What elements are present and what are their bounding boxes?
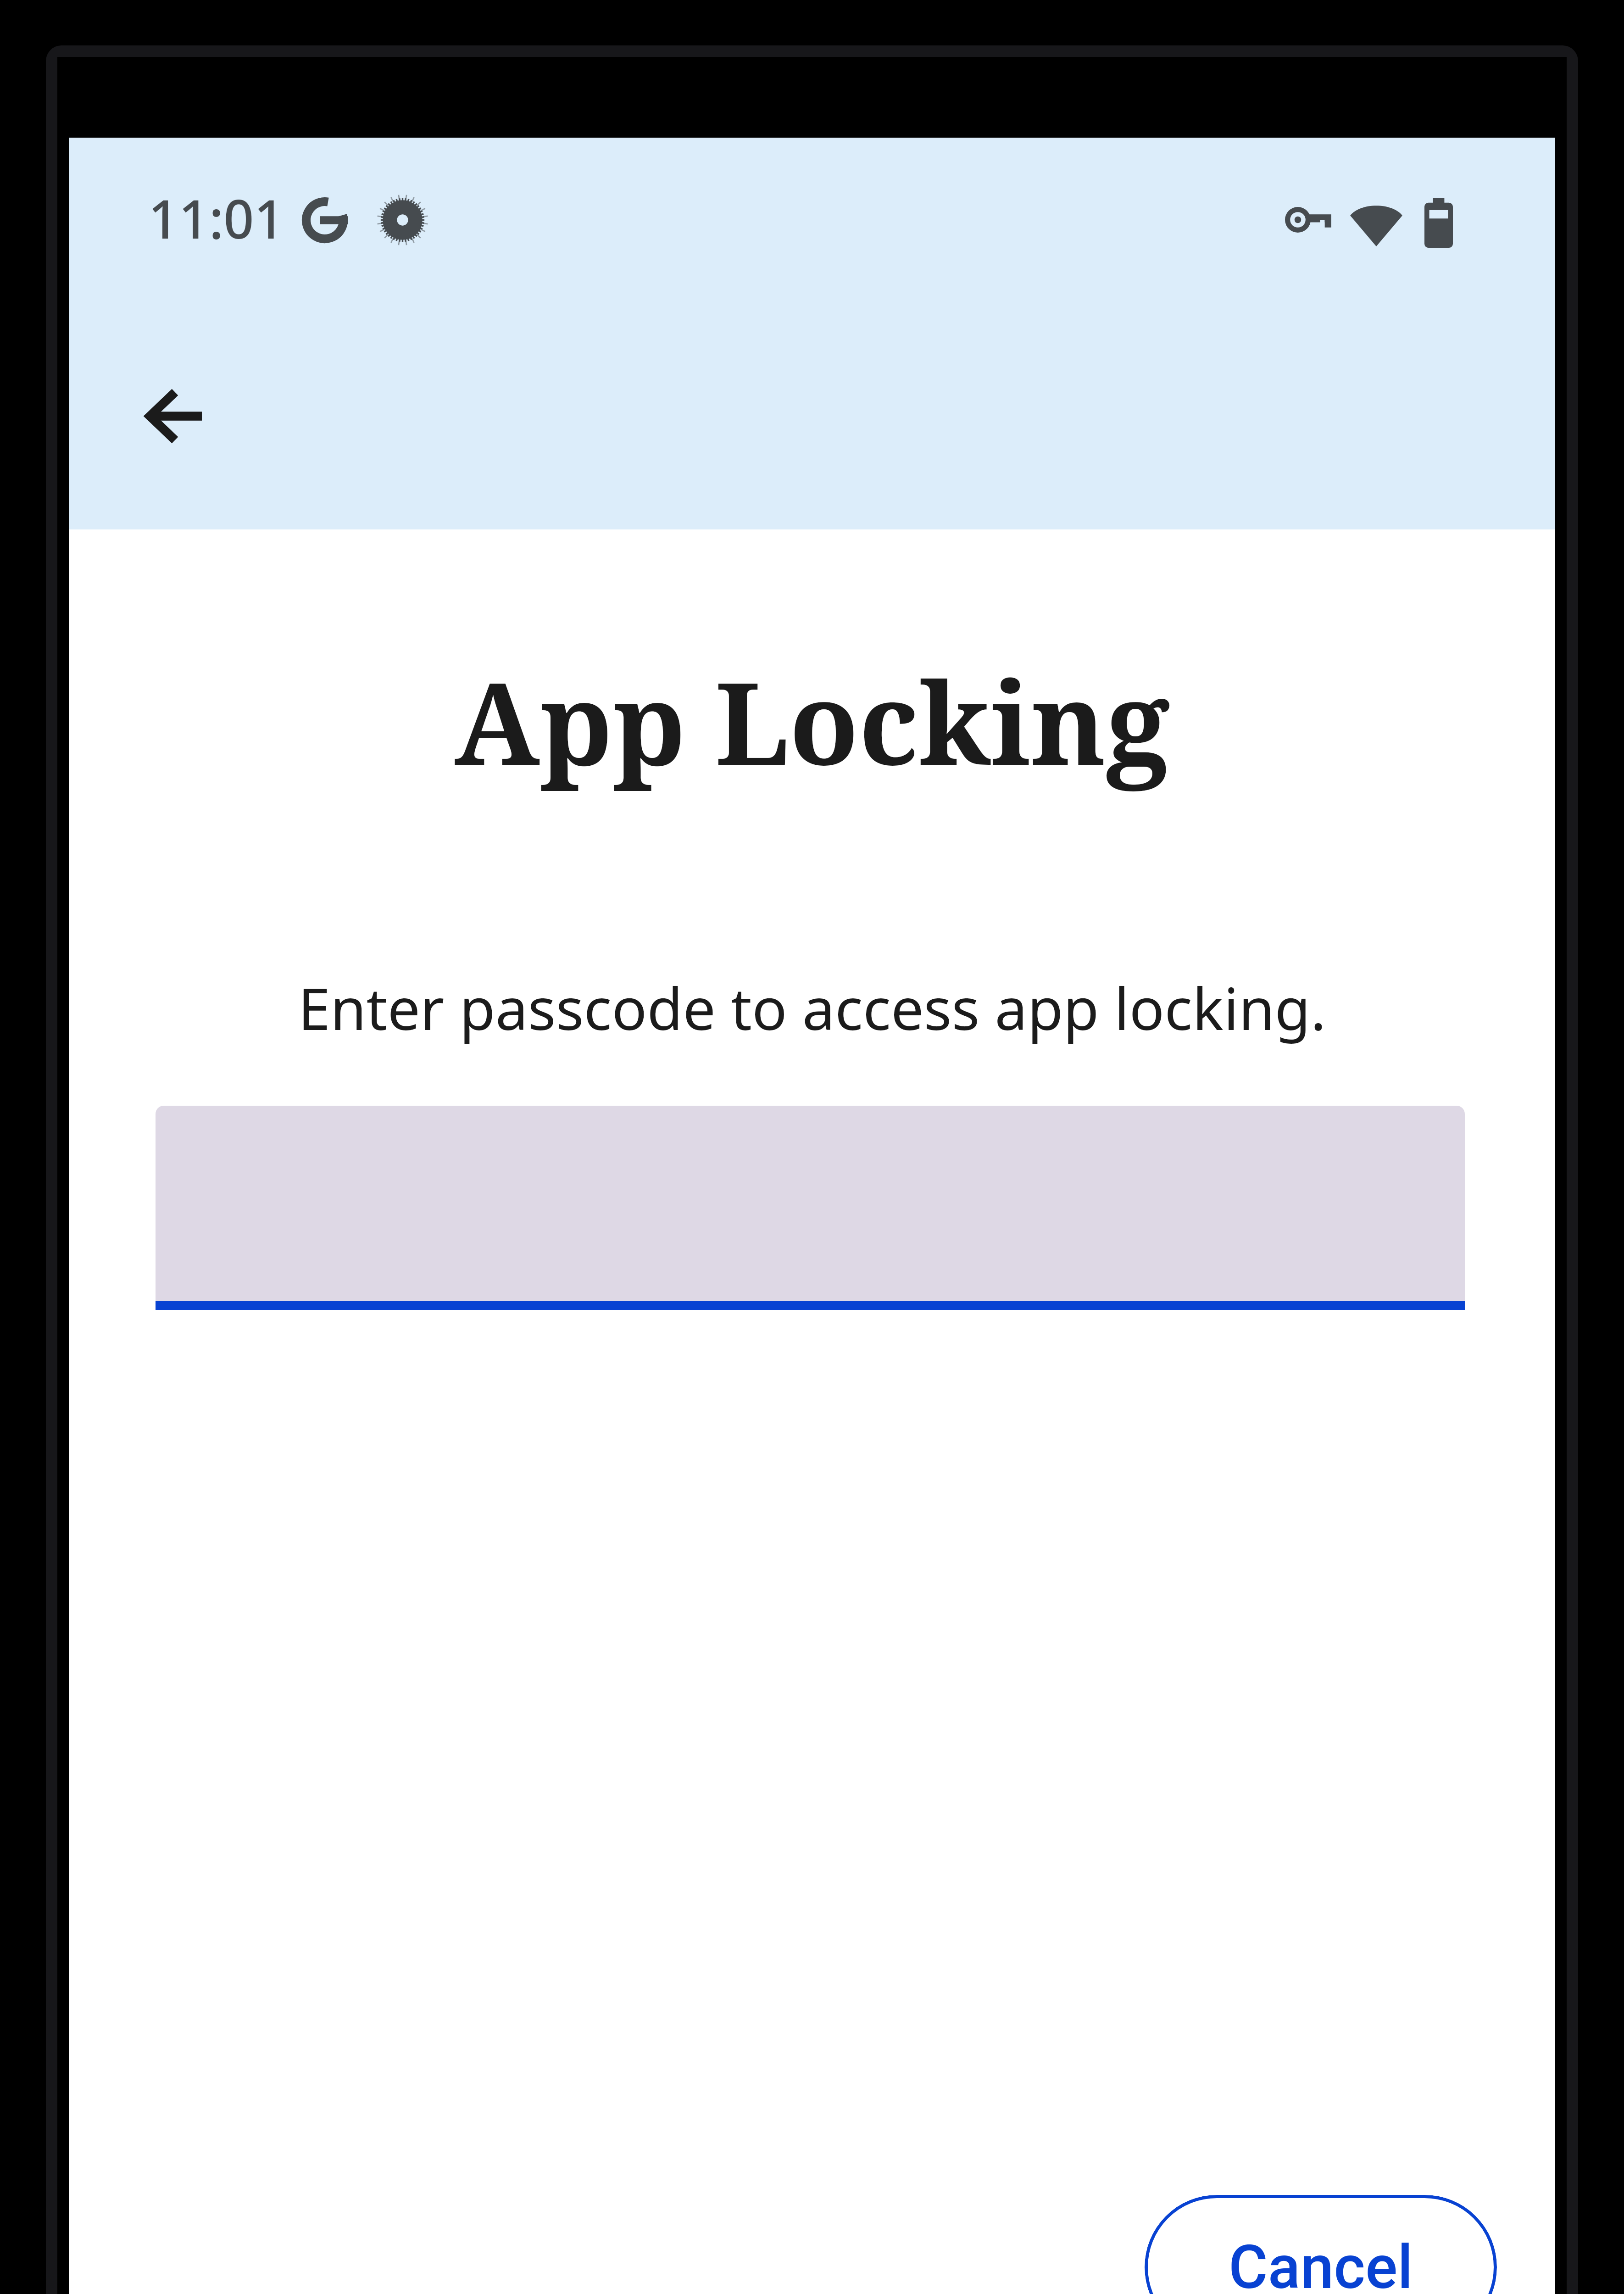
staticText: 11:01 bbox=[148, 182, 284, 254]
staticText: Enter passcode to access app locking. bbox=[69, 968, 1555, 1047]
button[interactable]: Back bbox=[100, 343, 247, 490]
staticText: App Locking bbox=[69, 644, 1555, 798]
button[interactable]: Cancel bbox=[1145, 2195, 1497, 2294]
staticText: Cancel bbox=[1229, 2232, 1413, 2294]
